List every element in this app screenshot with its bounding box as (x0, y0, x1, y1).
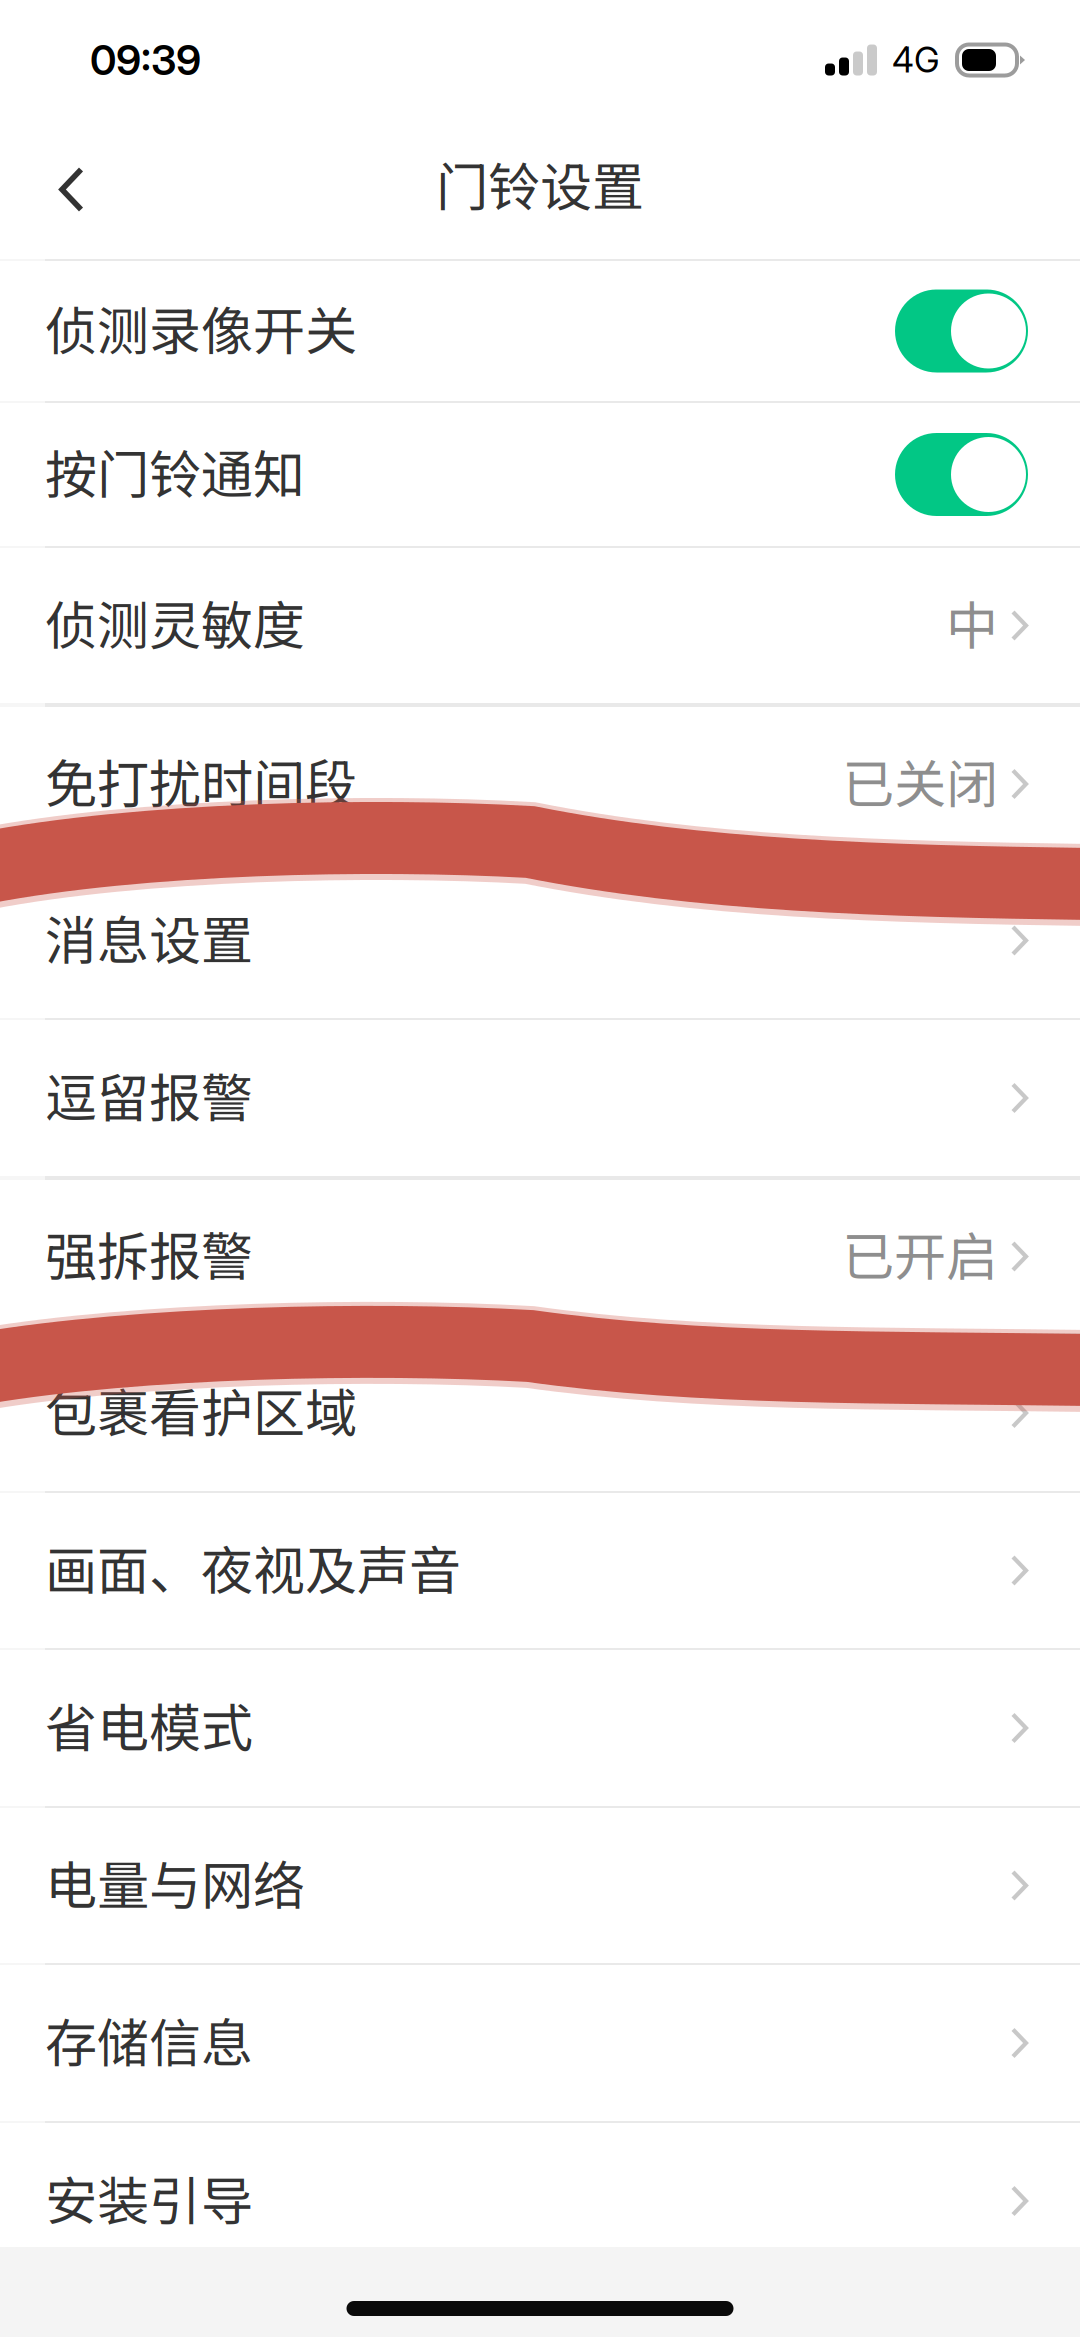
staticText: 电量与网络 (45, 1844, 305, 1920)
button[interactable]: 按门铃通知 (0, 403, 1080, 546)
button[interactable]: 省电模式 (0, 1650, 1080, 1806)
button[interactable]: 消息设置 (0, 863, 1080, 1018)
button[interactable]: 画面、夜视及声音 (0, 1493, 1080, 1648)
button[interactable]: 存储信息 (0, 1965, 1080, 2121)
button[interactable]: Back (0, 120, 124, 259)
staticText: 存储信息 (45, 2002, 253, 2077)
staticText: 侦测灵敏度 (45, 584, 305, 660)
staticText: 侦测录像开关 (45, 290, 357, 365)
staticText: 4G (892, 39, 940, 81)
staticText: 中 (946, 584, 998, 660)
staticText: 画面、夜视及声音 (45, 1529, 461, 1605)
staticText: 按门铃通知 (45, 433, 305, 509)
staticText: 逗留报警 (45, 1057, 253, 1132)
button[interactable]: 逗留报警 (0, 1020, 1080, 1176)
button[interactable]: 安装引导 (0, 2123, 1080, 2279)
button[interactable]: 侦测灵敏度 (0, 548, 1080, 703)
staticText: 免打扰时间段 (45, 743, 357, 818)
button[interactable]: 强拆报警 (0, 1180, 1080, 1333)
button[interactable]: 侦测录像开关 (0, 261, 1080, 401)
staticText: 门铃设置 (436, 146, 644, 221)
button[interactable]: 电量与网络 (0, 1808, 1080, 1963)
staticText: 包裹看护区域 (45, 1372, 357, 1447)
button[interactable]: 包裹看护区域 (0, 1335, 1080, 1491)
staticText: 安装引导 (45, 2160, 253, 2235)
staticText: 消息设置 (45, 899, 253, 975)
staticText: 已开启 (842, 1215, 998, 1291)
staticText: 09:39 (90, 35, 201, 85)
staticText: 强拆报警 (45, 1215, 253, 1291)
staticText: 已关闭 (842, 743, 998, 818)
button[interactable]: 免打扰时间段 (0, 707, 1080, 861)
staticText: 省电模式 (45, 1687, 253, 1762)
